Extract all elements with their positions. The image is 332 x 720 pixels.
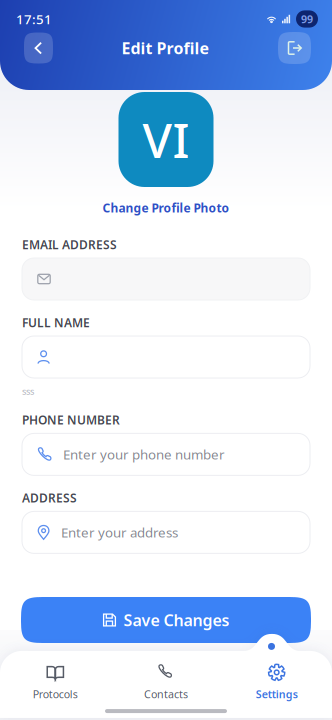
staticText: PHONE NUMBER [22, 412, 120, 428]
staticText: Save Changes [123, 609, 229, 631]
button[interactable]: Save Changes [21, 597, 311, 643]
button[interactable]: Protocols [0, 655, 111, 709]
button[interactable]: Contacts [111, 655, 221, 709]
staticText: EMAIL ADDRESS [22, 236, 117, 252]
staticText: sss [22, 385, 34, 397]
staticText: VI [142, 108, 189, 171]
staticText: Protocols [33, 687, 78, 701]
button[interactable]: Change Profile Photo [102, 187, 229, 216]
staticText: Enter your phone number [63, 445, 225, 463]
staticText: 17:51 [16, 10, 52, 28]
staticText: FULL NAME [22, 314, 90, 330]
staticText: ADDRESS [22, 490, 77, 506]
staticText: Change Profile Photo [102, 200, 229, 216]
button[interactable]: Back [24, 32, 53, 63]
button[interactable]: Log out [278, 32, 311, 64]
button[interactable]: Settings [221, 655, 332, 709]
staticText: 99 [301, 12, 313, 26]
staticText: Edit Profile [121, 37, 209, 59]
staticText: Contacts [144, 687, 188, 701]
staticText: Enter your address [61, 523, 178, 541]
button[interactable]: Profile photo [118, 92, 213, 187]
staticText: Settings [256, 687, 298, 701]
